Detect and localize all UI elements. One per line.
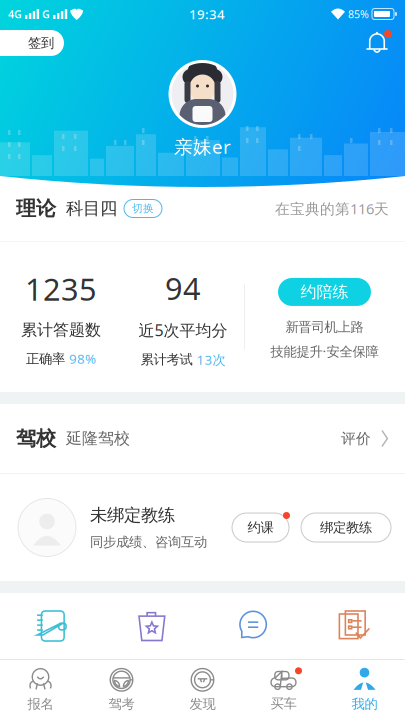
staticText: 98% <box>69 350 96 367</box>
button[interactable]: 通知 <box>359 28 395 58</box>
staticText: 4G <box>8 7 22 21</box>
staticText: 我的 <box>351 696 377 712</box>
staticText: 约陪练 <box>300 282 348 302</box>
button[interactable]: 买车 <box>243 660 324 720</box>
staticText: 同步成绩、咨询互动 <box>90 534 207 550</box>
staticText: 切换 <box>132 202 154 215</box>
staticText: 科目四 <box>66 198 117 219</box>
button[interactable]: 题库 <box>0 593 101 659</box>
staticText: 近5次平均分 <box>138 319 227 341</box>
button[interactable]: 我的 <box>324 660 405 720</box>
staticText: 买车 <box>270 695 296 712</box>
staticText: 1235 <box>25 268 97 309</box>
button[interactable]: 驾校 <box>0 404 405 473</box>
staticText: 驾校 <box>16 426 56 451</box>
staticText: G <box>42 7 50 21</box>
staticText: 亲妹er <box>174 134 231 159</box>
staticText: 技能提升·安全保障 <box>270 342 378 360</box>
button[interactable]: 发现 <box>162 660 243 720</box>
staticText: 累计答题数 <box>21 320 101 340</box>
staticText: 19:34 <box>189 5 225 23</box>
button[interactable]: 约课 <box>232 513 289 542</box>
button[interactable]: 绑定教练 <box>301 513 391 542</box>
staticText: 发现 <box>189 696 215 712</box>
staticText: 约课 <box>247 519 273 536</box>
staticText: 未绑定教练 <box>90 505 175 526</box>
button[interactable]: 收藏 <box>101 593 202 659</box>
button[interactable]: 签到 <box>0 30 80 56</box>
button[interactable]: 约陪练 <box>278 278 371 306</box>
button[interactable]: 问答 <box>202 593 304 659</box>
staticText: 理论 <box>16 196 56 221</box>
button[interactable]: 驾考 <box>81 660 162 720</box>
button[interactable]: 模拟考试 <box>304 593 405 659</box>
staticText: 签到 <box>28 35 54 51</box>
staticText: 在宝典的第116天 <box>275 199 389 218</box>
staticText: 评价 <box>341 429 371 447</box>
staticText: 累计考试 <box>140 351 196 368</box>
staticText: 94 <box>165 268 201 308</box>
staticText: 报名 <box>27 696 53 712</box>
staticText: 新晋司机上路 <box>285 319 363 335</box>
button[interactable]: 报名 <box>0 660 81 720</box>
staticText: 85% <box>348 7 369 21</box>
button[interactable]: 切换 <box>124 199 162 217</box>
staticText: 绑定教练 <box>320 519 372 536</box>
staticText: 驾考 <box>108 696 134 712</box>
staticText: 延隆驾校 <box>66 429 130 448</box>
staticText: 13次 <box>196 351 225 368</box>
staticText: 正确率 <box>26 350 69 367</box>
